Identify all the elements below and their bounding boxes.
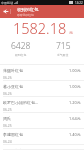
staticText: 收到红包	[15, 53, 27, 57]
button[interactable]: 朱丽叶红包	[0, 65, 84, 81]
staticText: 欧罗巴小姐的红包…	[3, 100, 39, 105]
button[interactable]: 王小明红包	[0, 145, 84, 150]
staticText: 06-24	[3, 139, 12, 143]
staticText: 1.40元	[69, 132, 81, 137]
button[interactable]: 周氏	[0, 113, 84, 129]
staticText: 1582.18	[13, 18, 67, 36]
staticText: 06-25	[3, 107, 12, 111]
button[interactable]: Back	[0, 5, 11, 18]
staticText: 06-25	[3, 123, 12, 127]
staticText: 06-26	[3, 91, 12, 95]
staticText: 手气最佳	[57, 53, 69, 57]
staticText: 朱丽叶红包	[3, 68, 23, 73]
staticText: 1.00元	[69, 84, 81, 89]
staticText: 中国移动	[1, 1, 13, 5]
button[interactable]: 欧罗巴小姐的红包…	[0, 97, 84, 113]
staticText: 06-26	[3, 75, 12, 79]
staticText: 14:22	[75, 1, 83, 5]
staticText: 715	[56, 40, 71, 52]
staticText: 李建国红包	[3, 132, 23, 137]
staticText: 元	[69, 30, 73, 35]
staticText: 看看我的红包	[17, 13, 34, 17]
button[interactable]: 蒋小亚红包	[0, 81, 84, 97]
staticText: 6428	[11, 40, 31, 52]
staticText: 收到的红包	[17, 7, 39, 12]
staticText: 蒋小亚红包	[3, 84, 23, 89]
staticText: 1.00元	[69, 68, 81, 73]
staticText: 1.64元	[69, 116, 81, 121]
button[interactable]: 李建国红包	[0, 129, 84, 145]
staticText: 王小明红包	[3, 148, 23, 150]
staticText: 周氏	[3, 116, 11, 121]
staticText: 1.20元	[69, 100, 81, 105]
staticText: 1.64元	[69, 148, 81, 150]
